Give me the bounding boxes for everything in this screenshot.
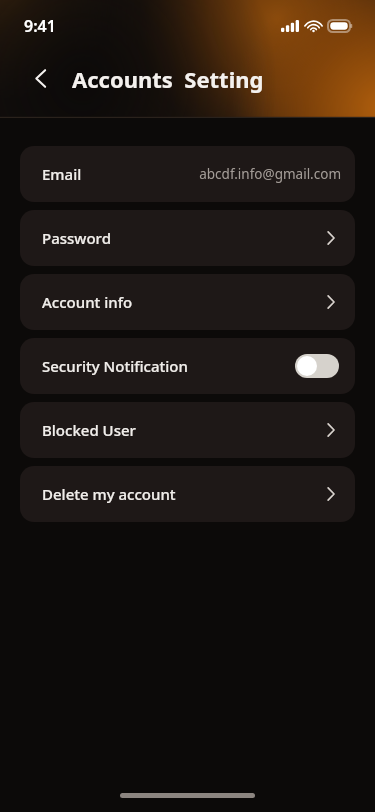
button[interactable]: Delete my account: [20, 466, 355, 522]
button[interactable]: Security Notification toggle: [295, 354, 339, 378]
button[interactable]: Security Notification: [20, 338, 355, 394]
staticText: abcdf.info@gmail.com: [90, 165, 341, 183]
staticText: Security Notification: [42, 356, 295, 376]
staticText: Account info: [42, 292, 327, 312]
staticText: Delete my account: [42, 484, 327, 504]
button[interactable]: Account info: [20, 274, 355, 330]
button[interactable]: Back: [20, 58, 60, 98]
staticText: Blocked User: [42, 420, 327, 440]
button[interactable]: Email: [20, 146, 355, 202]
staticText: Email: [42, 164, 82, 184]
staticText: Accounts Setting: [72, 64, 264, 94]
staticText: 9:41: [24, 15, 56, 37]
button[interactable]: Blocked User: [20, 402, 355, 458]
button[interactable]: Password: [20, 210, 355, 266]
staticText: Password: [42, 228, 327, 248]
